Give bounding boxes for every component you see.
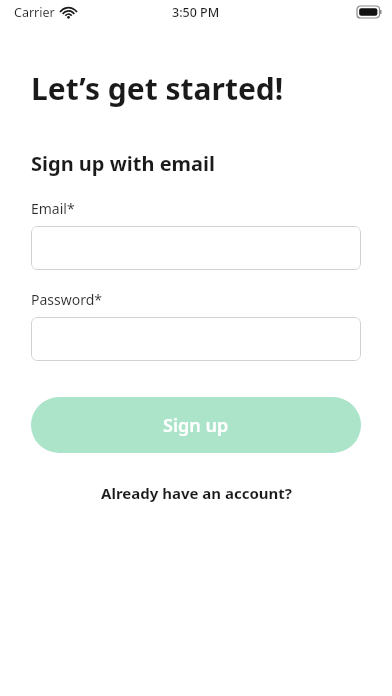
button[interactable]: Sign up [31, 397, 361, 453]
button[interactable]: Already have an account? [31, 483, 361, 503]
button[interactable] [31, 226, 361, 270]
staticText: 3:50 PM [172, 4, 220, 21]
staticText: Sign up with email [31, 150, 216, 177]
staticText: Email* [31, 199, 75, 218]
staticText: Let’s get started! [31, 68, 284, 109]
staticText: Password* [31, 290, 103, 309]
button[interactable] [31, 317, 361, 361]
staticText: Sign up [163, 413, 229, 438]
staticText: Carrier [14, 4, 55, 21]
staticText: Already have an account? [101, 483, 292, 503]
